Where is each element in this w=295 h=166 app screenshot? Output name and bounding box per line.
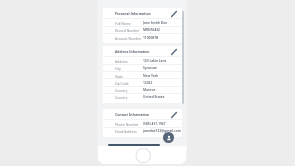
staticText: Jane Smith Doe [143, 21, 168, 25]
button[interactable]: Personal Information [103, 8, 182, 18]
button[interactable]: Phone Number [103, 120, 182, 127]
button[interactable]: Contact Information [103, 109, 182, 119]
button[interactable]: City [103, 64, 182, 71]
button[interactable]: Edit Personal Information [170, 10, 177, 17]
staticText: janedoe123@gmail.com [143, 129, 181, 133]
button[interactable]: Edit Address Information [170, 48, 177, 55]
button[interactable]: Address [103, 57, 182, 64]
button[interactable]: Edit Contact Information [170, 111, 177, 118]
button[interactable]: Country [103, 93, 182, 100]
staticText: Country [115, 88, 128, 92]
staticText: MRN56432 [143, 28, 160, 32]
button[interactable]: Account Number [103, 34, 182, 41]
staticText: United States [143, 95, 165, 99]
button[interactable]: Email Address [103, 127, 182, 134]
staticText: City [115, 66, 121, 70]
staticText: Country [115, 95, 128, 99]
button[interactable]: Record Number [103, 26, 182, 33]
staticText: Address [115, 59, 128, 63]
staticText: Account Number [115, 36, 142, 40]
button[interactable]: Full Name [103, 19, 182, 26]
button[interactable]: State [103, 72, 182, 79]
staticText: New York [143, 74, 159, 78]
staticText: Full Name [115, 21, 131, 25]
staticText: Zip Code [115, 81, 129, 85]
staticText: 1100087B [143, 36, 159, 40]
staticText: Email Address [115, 129, 137, 133]
staticText: Contact Information [115, 112, 150, 117]
staticText: State [115, 74, 123, 78]
staticText: Record Number [115, 28, 140, 32]
staticText: Personal Information [115, 11, 151, 16]
button[interactable]: Country [103, 86, 182, 93]
staticText: 123 Lakin Lane [143, 59, 167, 63]
staticText: Syracuse [143, 66, 158, 70]
button[interactable]: Address Information [103, 46, 182, 56]
staticText: Address Information [115, 49, 150, 54]
staticText: Monroe [143, 88, 156, 92]
staticText: Phone Number [115, 122, 139, 126]
button[interactable]: Zip Code [103, 79, 182, 86]
staticText: (585) 431-1967 [143, 122, 166, 126]
staticText: 13022 [143, 81, 153, 85]
button[interactable]: Add information [163, 132, 174, 143]
